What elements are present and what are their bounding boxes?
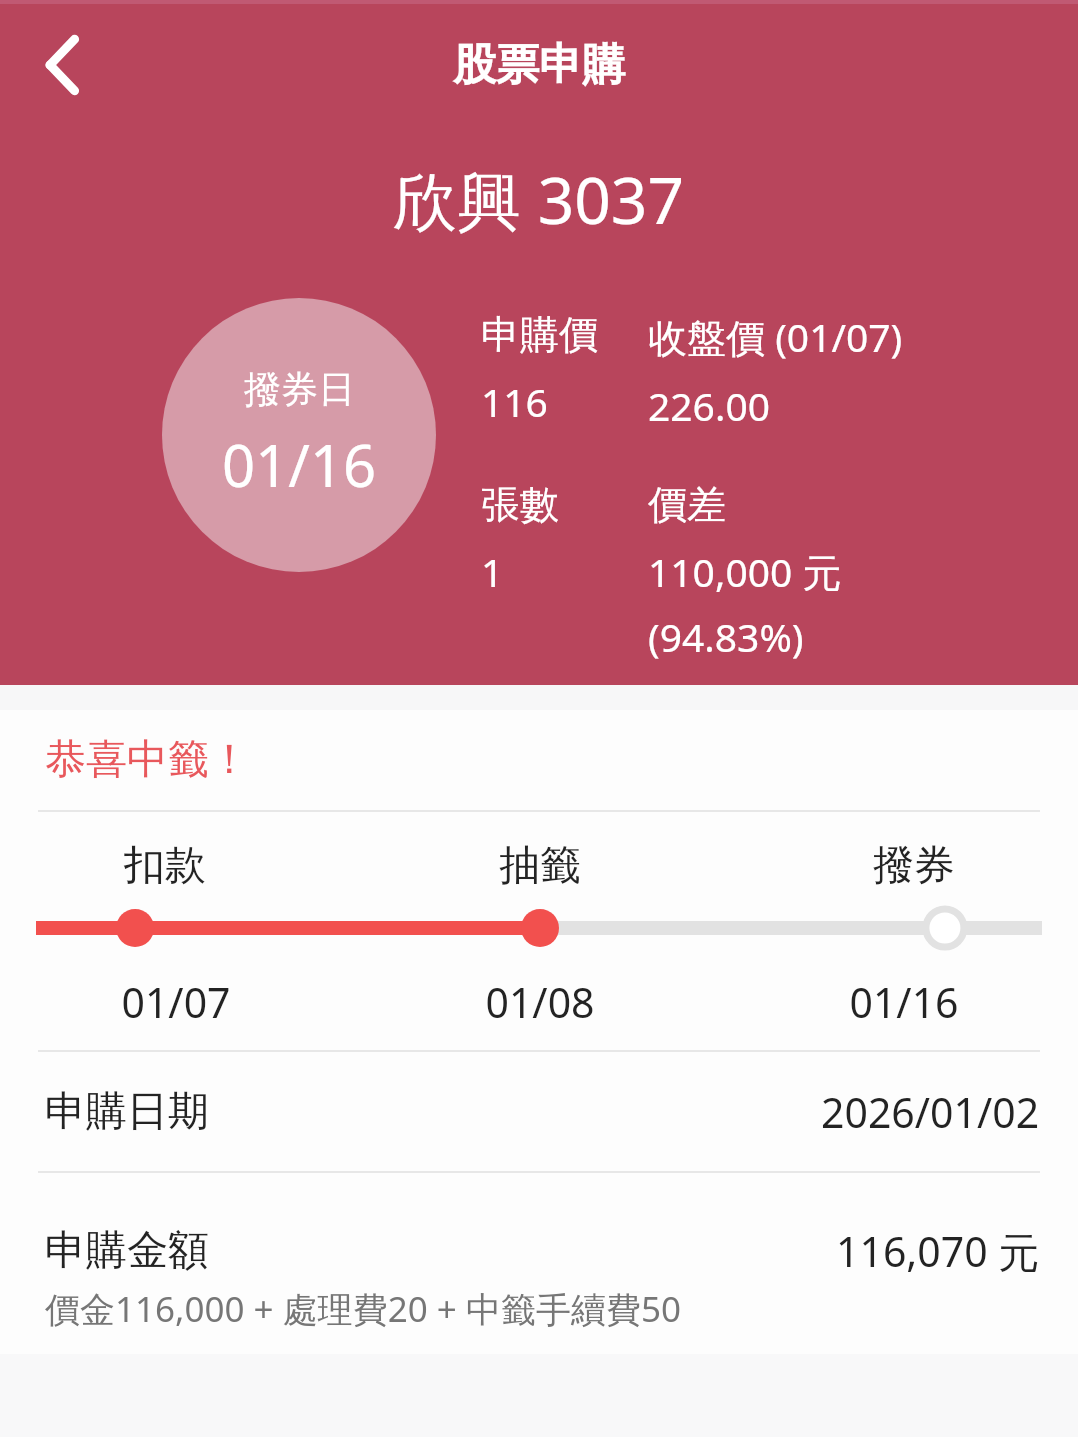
staticText: 扣款 [124, 840, 206, 892]
staticText: 116,070 元 [836, 1223, 1040, 1279]
staticText: 收盤價 (01/07) [648, 310, 903, 363]
staticText: 申購金額 [45, 1225, 209, 1277]
staticText: 1 [481, 545, 504, 598]
staticText: 申購日期 [45, 1086, 209, 1138]
staticText: 價差 [648, 480, 726, 529]
button[interactable]: Back [21, 24, 103, 106]
staticText: 撥券日 [244, 366, 355, 413]
staticText: 110,000 元 [648, 545, 842, 598]
staticText: 撥券 [873, 840, 955, 892]
staticText: 股票申購 [453, 38, 625, 92]
staticText: 01/07 [121, 974, 231, 1030]
staticText: 恭喜中籤！ [45, 734, 250, 786]
staticText: 2026/01/02 [821, 1084, 1040, 1140]
button[interactable]: 申購金額 [0, 1173, 1078, 1354]
staticText: 226.00 [648, 379, 770, 432]
staticText: 01/16 [849, 974, 959, 1030]
staticText: 張數 [481, 480, 559, 529]
button[interactable]: 申購日期 [0, 1052, 1078, 1171]
staticText: 01/08 [485, 974, 595, 1030]
staticText: 欣興 3037 [393, 156, 685, 243]
staticText: (94.83%) [648, 610, 804, 663]
staticText: 價金116,000 + 處理費20 + 中籤手續費50 [45, 1285, 682, 1333]
staticText: 116 [481, 375, 548, 428]
staticText: 抽籤 [499, 840, 581, 892]
staticText: 01/16 [222, 425, 377, 504]
staticText: 申購價 [481, 310, 598, 359]
